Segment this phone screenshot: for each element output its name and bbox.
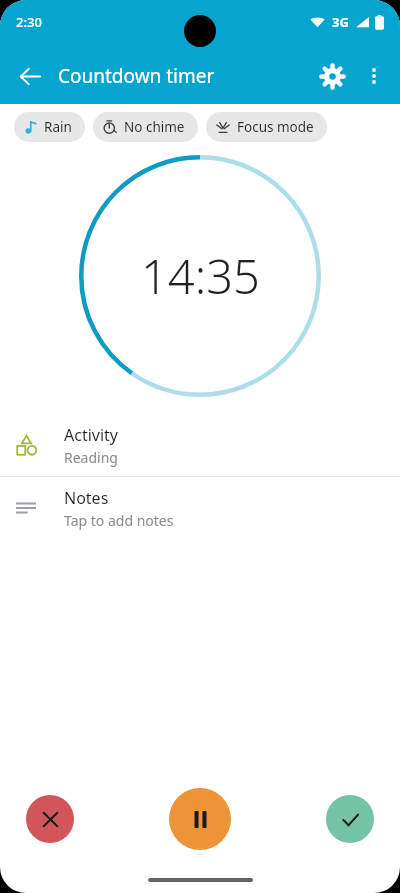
button[interactable]: Pause timer [169, 788, 231, 850]
staticText: 2:30 [16, 13, 42, 31]
button[interactable]: Back [8, 54, 52, 98]
staticText: Focus mode [237, 118, 314, 136]
button[interactable]: Activity [0, 414, 400, 476]
button[interactable]: Settings [310, 54, 354, 98]
button[interactable]: Cancel timer [26, 795, 74, 843]
staticText: 14:35 [141, 244, 260, 308]
staticText: Rain [44, 118, 72, 136]
staticText: Tap to add notes [64, 511, 174, 530]
staticText: Countdown timer [58, 63, 215, 89]
button[interactable]: Notes [0, 477, 400, 539]
staticText: Notes [64, 487, 109, 509]
staticText: 3G [332, 13, 349, 31]
button[interactable]: No chime [93, 112, 198, 142]
button[interactable]: Focus mode [206, 112, 327, 142]
staticText: No chime [124, 118, 185, 136]
button[interactable]: Rain [14, 112, 85, 142]
staticText: Activity [64, 424, 119, 446]
button[interactable]: Finish timer [326, 795, 374, 843]
button[interactable]: More options [354, 56, 394, 96]
staticText: Reading [64, 448, 118, 467]
